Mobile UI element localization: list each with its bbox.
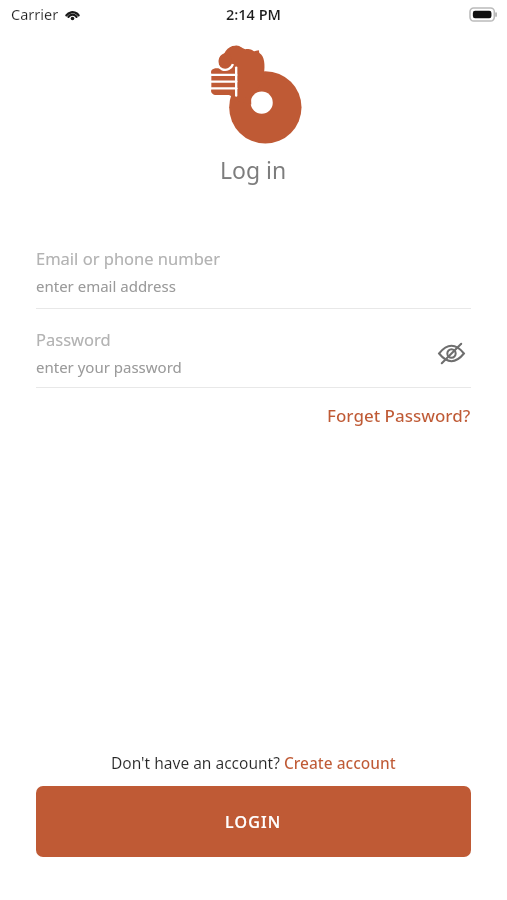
button[interactable]: LOGIN (36, 786, 471, 857)
button[interactable]: Show password (431, 333, 471, 373)
staticText: Forget Password? (327, 404, 471, 427)
button[interactable]: Email or phone number (36, 247, 471, 309)
staticText: Email or phone number (36, 247, 220, 269)
staticText: 2:14 PM (226, 4, 282, 24)
staticText: enter email address (36, 276, 176, 296)
button[interactable]: Password (36, 328, 431, 377)
staticText: Log in (220, 154, 287, 185)
button[interactable]: Forget Password? (327, 400, 471, 431)
staticText: Don't have an account? (111, 752, 284, 773)
staticText: enter your password (36, 357, 182, 377)
staticText: Password (36, 328, 111, 350)
staticText: Create account (284, 752, 396, 773)
button[interactable]: Create account (284, 752, 396, 773)
staticText: Carrier (11, 4, 59, 24)
staticText: LOGIN (225, 811, 282, 833)
